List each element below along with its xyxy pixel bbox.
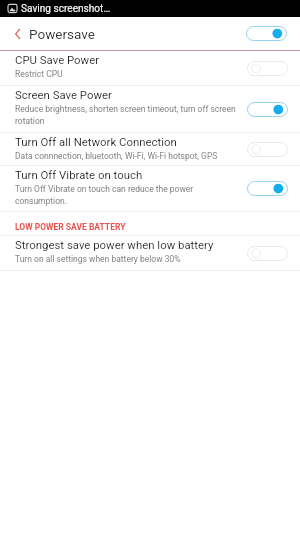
staticText: Turn Off Vibrate on touch can reduce the… — [15, 182, 194, 194]
staticText: Turn Off all Network Connection — [15, 135, 177, 149]
button[interactable]: Turn Off Vibrate on touch — [0, 166, 300, 211]
button[interactable]: Turn Off all Network Connection — [0, 133, 300, 165]
staticText: Data connnection, bluetooth, Wi-Fi, Wi-F… — [15, 149, 218, 161]
button[interactable]: Toggle Turn Off all Network Connection — [241, 138, 300, 161]
button[interactable]: Toggle CPU Save Power — [241, 57, 300, 80]
staticText: Powersave — [29, 26, 95, 42]
button[interactable]: Power saving master switch — [238, 20, 300, 47]
button[interactable]: Back — [0, 23, 29, 45]
staticText: Strongest save power when low battery — [15, 238, 214, 252]
button[interactable]: Toggle Strongest save power when low bat… — [241, 242, 300, 265]
staticText: rotation — [15, 114, 45, 126]
staticText: LOW POWER SAVE BATTERY — [15, 222, 126, 232]
button[interactable]: Screen Save Power — [0, 86, 300, 132]
button[interactable]: CPU Save Power — [0, 51, 300, 85]
staticText: CPU Save Power — [15, 53, 100, 67]
staticText: Saving screenshot… — [21, 3, 111, 15]
button[interactable]: Toggle Turn Off Vibrate on touch — [241, 177, 300, 200]
button[interactable]: Toggle Screen Save Power — [241, 98, 300, 121]
staticText: consumption. — [15, 194, 67, 206]
button[interactable]: Strongest save power when low battery — [0, 236, 300, 270]
staticText: Reduce brightness, shorten screen timeou… — [15, 102, 236, 114]
staticText: Turn on all settings when battery below … — [15, 252, 181, 264]
staticText: Turn Off Vibrate on touch — [15, 168, 143, 182]
staticText: Screen Save Power — [15, 88, 112, 102]
staticText: Restrict CPU — [15, 67, 63, 79]
